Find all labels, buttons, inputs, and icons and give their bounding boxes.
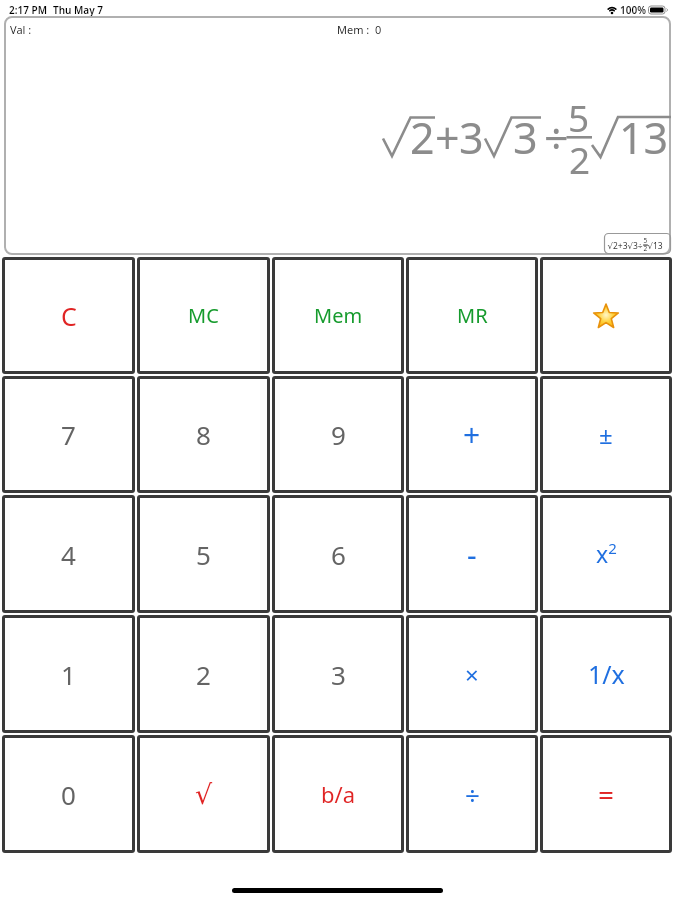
- button[interactable]: 1/x: [540, 615, 672, 733]
- button[interactable]: MR: [406, 257, 538, 374]
- staticText: 7: [61, 417, 76, 452]
- staticText: 1: [61, 657, 76, 692]
- staticText: +: [463, 414, 481, 455]
- button[interactable]: ÷: [406, 735, 538, 853]
- button[interactable]: ×: [406, 615, 538, 733]
- button[interactable]: +: [406, 376, 538, 493]
- staticText: √: [195, 779, 213, 810]
- staticText: MC: [188, 302, 219, 329]
- staticText: =: [598, 775, 615, 813]
- button[interactable]: 6: [272, 495, 404, 613]
- button[interactable]: 9: [272, 376, 404, 493]
- staticText: Val :: [10, 22, 32, 37]
- staticText: 5: [196, 537, 211, 572]
- staticText: b/a: [321, 779, 356, 809]
- staticText: MR: [457, 302, 488, 329]
- button[interactable]: x2: [540, 495, 672, 613]
- staticText: 8: [196, 417, 211, 452]
- button[interactable]: 0: [2, 735, 135, 853]
- staticText: ÷: [465, 777, 480, 812]
- staticText: 4: [61, 537, 76, 572]
- button[interactable]: b/a: [272, 735, 404, 853]
- button[interactable]: C: [2, 257, 135, 374]
- staticText: Mem : 0: [337, 22, 382, 37]
- button[interactable]: -: [406, 495, 538, 613]
- button[interactable]: 4: [2, 495, 135, 613]
- button[interactable]: ±: [540, 376, 672, 493]
- staticText: C: [61, 299, 77, 333]
- staticText: 2: [196, 657, 211, 692]
- button[interactable]: Mem: [272, 257, 404, 374]
- staticText: 1/x: [588, 657, 625, 691]
- staticText: 9: [331, 417, 346, 452]
- button[interactable]: 3: [272, 615, 404, 733]
- staticText: Mem: [314, 302, 363, 329]
- button[interactable]: √: [137, 735, 270, 853]
- staticText: ×: [465, 658, 479, 691]
- staticText: 0: [61, 777, 76, 812]
- staticText: Thu May 7: [53, 3, 103, 17]
- staticText: x2: [596, 538, 617, 570]
- button[interactable]: 1: [2, 615, 135, 733]
- button[interactable]: 7: [2, 376, 135, 493]
- button[interactable]: 5: [137, 495, 270, 613]
- staticText: 3: [331, 657, 346, 692]
- staticText: 2:17 PM: [9, 3, 47, 17]
- staticText: -: [467, 534, 477, 575]
- button[interactable]: 2: [137, 615, 270, 733]
- staticText: 100%: [620, 3, 646, 17]
- button[interactable]: MC: [137, 257, 270, 374]
- button[interactable]: =: [540, 735, 672, 853]
- staticText: 6: [331, 537, 346, 572]
- button[interactable]: [540, 257, 672, 374]
- button[interactable]: 8: [137, 376, 270, 493]
- staticText: ±: [599, 418, 613, 451]
